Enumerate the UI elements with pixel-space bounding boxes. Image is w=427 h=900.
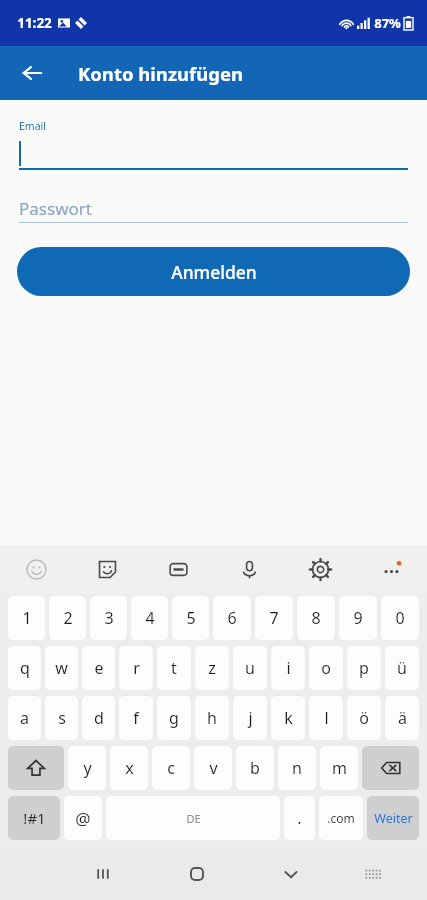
button[interactable]: 6 (213, 596, 251, 640)
button[interactable]: Tastatur wechseln (338, 848, 408, 900)
staticText: y (83, 757, 92, 779)
button[interactable]: Einstellungen (285, 545, 356, 593)
button[interactable]: Startseite (150, 848, 244, 900)
staticText: .com (327, 810, 355, 826)
staticText: 5 (186, 607, 196, 629)
button[interactable]: 9 (339, 596, 377, 640)
staticText: Konto hinzufügen (78, 61, 243, 86)
staticText: n (292, 757, 302, 779)
button[interactable]: 7 (255, 596, 293, 640)
staticText: 1 (22, 607, 32, 629)
staticText: 11:22 (17, 14, 52, 32)
button[interactable]: !#1 (8, 796, 60, 840)
button[interactable]: k (271, 696, 305, 740)
staticText: m (332, 757, 347, 779)
button[interactable]: Zurück (10, 51, 54, 95)
staticText: d (94, 707, 104, 729)
button[interactable]: 2 (49, 596, 86, 640)
staticText: 9 (353, 607, 363, 629)
button[interactable]: 1 (8, 596, 45, 640)
button[interactable]: Mehr (356, 545, 427, 593)
staticText: 4 (145, 607, 155, 629)
staticText: Email (19, 119, 46, 133)
button[interactable]: 8 (297, 596, 335, 640)
button[interactable]: c (152, 746, 190, 790)
button[interactable]: Emoji (0, 545, 72, 593)
button[interactable]: ä (385, 696, 419, 740)
button[interactable]: s (45, 696, 78, 740)
button[interactable]: ü (385, 646, 419, 690)
staticText: b (250, 757, 260, 779)
button[interactable]: p (347, 646, 381, 690)
staticText: q (20, 657, 30, 679)
button[interactable]: o (309, 646, 343, 690)
button[interactable]: .com (319, 796, 363, 840)
button[interactable]: e (82, 646, 115, 690)
staticText: . (297, 807, 302, 829)
staticText: u (245, 657, 255, 679)
button[interactable]: DE (106, 796, 280, 840)
button[interactable]: Sticker (72, 545, 143, 593)
button[interactable]: Löschen (362, 746, 419, 790)
button[interactable]: j (233, 696, 267, 740)
staticText: a (20, 707, 29, 729)
staticText: 2 (63, 607, 73, 629)
staticText: j (248, 707, 253, 729)
button[interactable]: w (45, 646, 78, 690)
staticText: e (94, 657, 104, 679)
button[interactable]: 5 (172, 596, 209, 640)
staticText: s (58, 707, 66, 729)
staticText: p (359, 657, 369, 679)
staticText: ö (359, 707, 369, 729)
button[interactable]: v (194, 746, 232, 790)
button[interactable]: Letzte Apps (56, 848, 150, 900)
button[interactable]: Tastatur schließen (244, 848, 338, 900)
button[interactable]: GIF (143, 545, 214, 593)
button[interactable]: g (157, 696, 191, 740)
button[interactable]: h (195, 696, 229, 740)
button[interactable]: Email (19, 119, 408, 170)
button[interactable]: b (236, 746, 274, 790)
staticText: Anmelden (171, 260, 257, 284)
staticText: v (209, 757, 218, 779)
button[interactable]: x (110, 746, 148, 790)
button[interactable]: t (157, 646, 191, 690)
staticText: l (324, 707, 329, 729)
staticText: x (125, 757, 134, 779)
button[interactable]: f (119, 696, 153, 740)
staticText: ä (398, 707, 407, 729)
button[interactable]: . (284, 796, 315, 840)
button[interactable]: u (233, 646, 267, 690)
button[interactable]: z (195, 646, 229, 690)
button[interactable]: 3 (90, 596, 127, 640)
button[interactable]: i (271, 646, 305, 690)
button[interactable]: Passwort (19, 195, 408, 223)
button[interactable]: m (320, 746, 358, 790)
staticText: w (55, 657, 68, 679)
button[interactable]: l (309, 696, 343, 740)
staticText: DE (186, 811, 201, 826)
staticText: Passwort (19, 197, 92, 220)
button[interactable]: q (8, 646, 41, 690)
staticText: k (284, 707, 293, 729)
button[interactable]: ö (347, 696, 381, 740)
staticText: f (133, 707, 139, 729)
staticText: Weiter (374, 810, 413, 827)
button[interactable]: 0 (381, 596, 419, 640)
staticText: o (321, 657, 331, 679)
staticText: i (286, 657, 291, 679)
button[interactable]: d (82, 696, 115, 740)
staticText: z (208, 657, 216, 679)
button[interactable]: Umschalt (8, 746, 64, 790)
button[interactable]: Weiter (367, 796, 419, 840)
button[interactable]: r (119, 646, 153, 690)
staticText: h (207, 707, 217, 729)
button[interactable]: 4 (131, 596, 168, 640)
button[interactable]: a (8, 696, 41, 740)
button[interactable]: Anmelden (17, 247, 410, 296)
button[interactable]: @ (64, 796, 102, 840)
staticText: c (167, 757, 175, 779)
button[interactable]: n (278, 746, 316, 790)
button[interactable]: y (68, 746, 106, 790)
button[interactable]: Spracheingabe (214, 545, 285, 593)
